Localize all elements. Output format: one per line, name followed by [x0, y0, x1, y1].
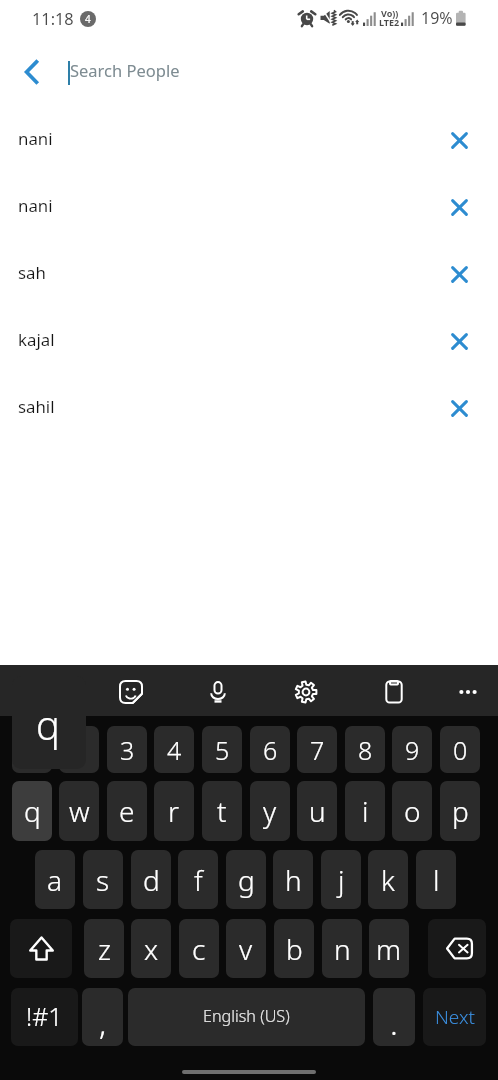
staticText: j [338, 861, 345, 899]
staticText: m [376, 930, 402, 968]
staticText: e [119, 792, 135, 830]
button[interactable]: e [107, 781, 147, 841]
staticText: !#1 [26, 999, 63, 1033]
staticText: b [286, 930, 303, 968]
button[interactable]: 9 [392, 726, 432, 773]
button[interactable]: b [274, 919, 314, 978]
button[interactable]: English (US) [128, 988, 365, 1046]
button[interactable]: n [322, 919, 362, 978]
staticText: v [239, 930, 253, 968]
button[interactable]: More options [447, 671, 489, 713]
staticText: i [362, 792, 369, 830]
staticText: r [168, 792, 180, 830]
button[interactable]: Next [423, 988, 486, 1046]
staticText: , [99, 1001, 107, 1045]
button[interactable]: 1 [12, 726, 52, 773]
button[interactable]: v [226, 919, 266, 978]
button[interactable]: 0 [440, 726, 480, 773]
button[interactable]: Voice input [197, 671, 239, 713]
button[interactable]: Backspace [428, 919, 486, 978]
staticText: LTE2 [379, 16, 400, 28]
staticText: 0 [453, 733, 468, 767]
button[interactable]: 6 [250, 726, 290, 773]
button[interactable]: 8 [345, 726, 385, 773]
button[interactable]: z [84, 919, 124, 978]
button[interactable]: o [392, 781, 432, 841]
staticText: f [194, 861, 203, 899]
button[interactable]: , [82, 988, 123, 1046]
staticText: English (US) [203, 1005, 290, 1027]
staticText: Search People [70, 59, 180, 81]
staticText: n [334, 930, 351, 968]
button[interactable]: g [226, 850, 266, 909]
button[interactable]: m [369, 919, 409, 978]
staticText: h [285, 861, 302, 899]
button[interactable]: s [83, 850, 123, 909]
staticText: c [192, 930, 206, 968]
button[interactable]: kajal [0, 307, 498, 374]
staticText: sah [18, 261, 46, 284]
button[interactable]: Remove [442, 123, 476, 157]
staticText: kajal [18, 328, 55, 351]
button[interactable]: sahil [0, 374, 498, 441]
staticText: t [217, 792, 227, 830]
button[interactable]: i [345, 781, 385, 841]
staticText: nani [18, 194, 53, 217]
staticText: 19% [421, 7, 453, 29]
button[interactable]: d [131, 850, 171, 909]
staticText: q [36, 697, 60, 751]
staticText: Vo)) [381, 7, 399, 19]
button[interactable]: 5 [202, 726, 242, 773]
button[interactable]: Remove [442, 391, 476, 425]
button[interactable]: t [202, 781, 242, 841]
button[interactable]: p [440, 781, 480, 841]
staticText: 1 [25, 733, 40, 767]
button[interactable]: j [321, 850, 361, 909]
button[interactable]: Keyboard settings [285, 671, 327, 713]
button[interactable]: h [273, 850, 313, 909]
button[interactable]: sah [0, 240, 498, 307]
button[interactable]: l [416, 850, 456, 909]
staticText: g [238, 861, 255, 899]
button[interactable]: 3 [107, 726, 147, 773]
button[interactable]: q [12, 781, 52, 841]
button[interactable]: y [250, 781, 290, 841]
staticText: x [144, 930, 159, 968]
button[interactable]: f [178, 850, 218, 909]
button[interactable]: x [131, 919, 171, 978]
button[interactable]: w [59, 781, 99, 841]
staticText: Next [435, 1004, 475, 1030]
staticText: nani [18, 127, 53, 150]
staticText: 5 [215, 733, 230, 767]
button[interactable]: nani [0, 106, 498, 173]
staticText: 3 [120, 733, 135, 767]
button[interactable]: Remove [442, 324, 476, 358]
button[interactable]: Shift [10, 919, 72, 978]
staticText: 6 [263, 733, 278, 767]
staticText: . [390, 1001, 398, 1045]
button[interactable]: r [154, 781, 194, 841]
button[interactable]: Remove [442, 257, 476, 291]
button[interactable]: 2 [59, 726, 99, 773]
button[interactable]: c [179, 919, 219, 978]
staticText: 8 [358, 733, 373, 767]
button[interactable]: 4 [154, 726, 194, 773]
button[interactable]: !#1 [11, 988, 78, 1046]
button[interactable]: u [297, 781, 337, 841]
button[interactable]: Back [9, 50, 53, 94]
button[interactable]: k [368, 850, 408, 909]
button[interactable]: nani [0, 173, 498, 240]
button[interactable]: a [35, 850, 75, 909]
button[interactable]: Remove [442, 190, 476, 224]
staticText: y [263, 792, 277, 830]
staticText: p [452, 792, 469, 830]
button[interactable]: Stickers [110, 671, 152, 713]
staticText: k [381, 861, 395, 899]
staticText: a [47, 861, 63, 899]
staticText: s [96, 861, 110, 899]
button[interactable]: 7 [297, 726, 337, 773]
button[interactable]: . [373, 988, 415, 1046]
button[interactable]: Clipboard [373, 671, 415, 713]
staticText: u [309, 792, 326, 830]
